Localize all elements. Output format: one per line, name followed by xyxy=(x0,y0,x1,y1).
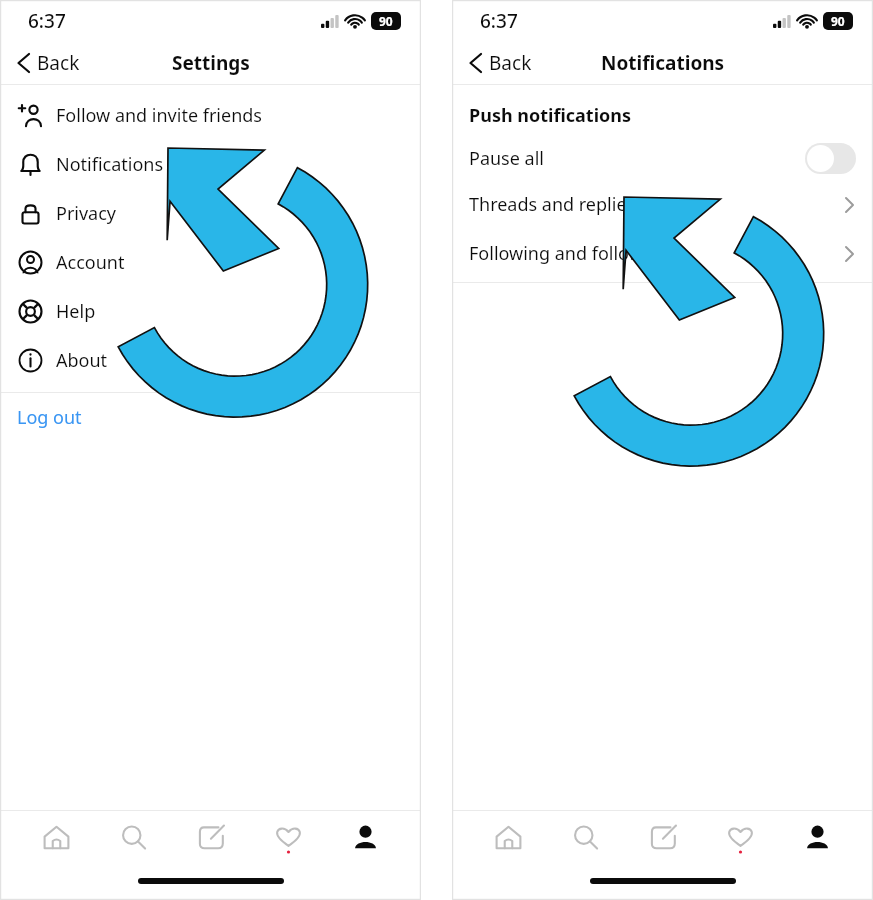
button[interactable]: Back xyxy=(0,43,96,83)
staticText: Back xyxy=(489,50,532,76)
staticText: About xyxy=(56,348,108,373)
staticText: 6:37 xyxy=(28,8,66,34)
staticText: 90 xyxy=(831,13,845,29)
staticText: 6:37 xyxy=(480,8,518,34)
staticText: Settings xyxy=(172,50,250,76)
button[interactable]: Threads and replies xyxy=(452,180,873,229)
button[interactable]: Log out xyxy=(0,393,421,441)
staticText: Pause all xyxy=(469,146,544,171)
staticText: Help xyxy=(56,299,96,324)
button[interactable]: Back xyxy=(452,43,548,83)
staticText: Following and followers xyxy=(469,241,669,266)
button[interactable]: Privacy xyxy=(0,189,421,238)
staticText: Privacy xyxy=(56,201,117,226)
button[interactable]: Help xyxy=(0,287,421,336)
staticText: Log out xyxy=(17,405,82,430)
staticText: Notifications xyxy=(56,152,164,177)
button[interactable]: About xyxy=(0,336,421,385)
staticText: Follow and invite friends xyxy=(56,103,262,128)
staticText: Push notifications xyxy=(469,103,632,128)
button[interactable]: New thread xyxy=(180,823,242,871)
staticText: Account xyxy=(56,250,125,275)
button[interactable]: Home xyxy=(477,823,539,871)
button[interactable]: Search xyxy=(554,823,616,871)
staticText: Back xyxy=(37,50,80,76)
button[interactable]: Following and followers xyxy=(452,229,873,278)
button[interactable]: Profile xyxy=(786,823,848,871)
button[interactable]: Account xyxy=(0,238,421,287)
button[interactable]: Search xyxy=(102,823,164,871)
staticText: 90 xyxy=(379,13,393,29)
button[interactable]: Profile xyxy=(334,823,396,871)
staticText: Notifications xyxy=(601,50,725,76)
button[interactable]: Notifications xyxy=(0,140,421,189)
button[interactable]: Activity xyxy=(257,823,319,871)
button[interactable]: Activity xyxy=(709,823,771,871)
staticText: Threads and replies xyxy=(469,192,636,217)
button[interactable]: Home xyxy=(25,823,87,871)
button[interactable]: Pause all xyxy=(452,136,873,180)
button[interactable]: Follow and invite friends xyxy=(0,91,421,140)
button[interactable]: New thread xyxy=(632,823,694,871)
